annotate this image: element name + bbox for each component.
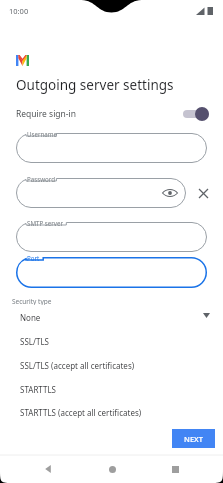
button[interactable]: Open security type menu [196,305,216,325]
button[interactable]: STARTTLS (accept all certificates) [8,401,195,423]
button[interactable]: NEXT [172,429,215,448]
button[interactable]: Port [16,257,207,288]
staticText: SMTP server [27,219,63,227]
staticText: None [20,312,41,323]
button[interactable]: Recent apps [159,455,191,483]
button[interactable]: SSL/TLS [8,329,195,353]
button[interactable]: Password [16,178,186,208]
button[interactable]: Home [96,455,128,483]
staticText: SSL/TLS (accept all certificates) [20,360,135,371]
staticText: Outgoing server settings [16,76,174,94]
staticText: Require sign-in [16,108,77,120]
button[interactable]: SSL/TLS (accept all certificates) [8,353,195,377]
staticText: Password [27,175,55,183]
button[interactable]: Require sign-in [0,104,223,124]
staticText: SSL/TLS [20,336,49,347]
button[interactable]: Back [32,455,64,483]
staticText: STARTTLS [20,384,57,395]
button[interactable]: Clear password [192,182,214,204]
staticText: STARTTLS (accept all certificates) [20,407,142,418]
staticText: 10:00 [9,6,29,16]
button[interactable]: STARTTLS [8,377,195,401]
staticText: Port [27,254,40,262]
button[interactable]: SMTP server [16,222,207,252]
button[interactable]: Username [16,133,207,163]
staticText: NEXT [184,434,203,444]
button[interactable]: Require sign-in toggle [183,107,209,121]
staticText: Security type [12,297,52,306]
button[interactable]: None [8,305,195,329]
staticText: Username [27,130,58,138]
